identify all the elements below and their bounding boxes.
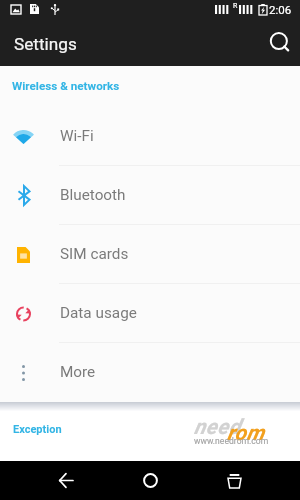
button[interactable]: Back bbox=[46, 461, 86, 500]
button[interactable]: Data usage bbox=[0, 284, 300, 343]
button[interactable]: Bluetooth bbox=[0, 166, 300, 225]
button[interactable]: Search bbox=[255, 20, 299, 64]
staticText: More bbox=[60, 363, 96, 381]
staticText: Bluetooth bbox=[60, 186, 126, 204]
button[interactable]: More bbox=[0, 343, 300, 402]
staticText: Data usage bbox=[60, 304, 137, 322]
staticText: Wi-Fi bbox=[60, 127, 94, 145]
button[interactable]: Recent apps bbox=[214, 461, 254, 500]
staticText: www.needrom.com bbox=[194, 436, 269, 446]
staticText: rom bbox=[227, 421, 265, 446]
staticText: 2:06 bbox=[269, 3, 292, 16]
button[interactable]: Wi-Fi bbox=[0, 107, 300, 166]
staticText: need bbox=[194, 415, 241, 440]
staticText: Settings bbox=[14, 34, 77, 54]
button[interactable]: Exception bbox=[0, 411, 62, 436]
staticText: Wireless & networks bbox=[12, 79, 120, 93]
button[interactable]: Home bbox=[130, 461, 170, 500]
staticText: SIM cards bbox=[60, 245, 129, 263]
staticText: R bbox=[233, 2, 238, 10]
button[interactable]: SIM cards bbox=[0, 225, 300, 284]
